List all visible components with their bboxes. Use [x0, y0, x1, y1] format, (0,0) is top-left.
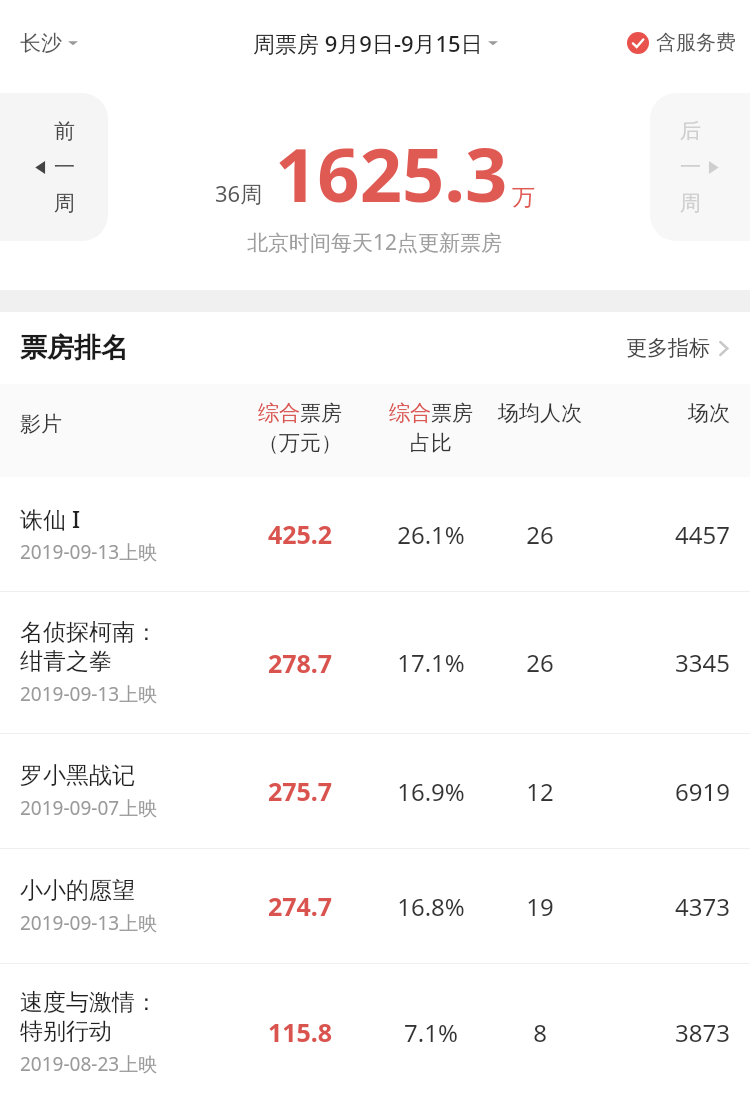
staticText: 场均人次	[478, 400, 602, 426]
button[interactable]: 名侦探柯南：	[0, 592, 750, 733]
button[interactable]: 速度与激情：	[0, 964, 750, 1100]
staticText: 名侦探柯南：	[20, 618, 158, 647]
staticText: 26.1%	[362, 518, 500, 551]
staticText: 北京时间每天12点更新票房	[247, 228, 503, 257]
button[interactable]: 后 一 周	[650, 93, 750, 241]
staticText: 8	[478, 1016, 602, 1049]
staticText: 274.7	[225, 889, 375, 923]
staticText: 19	[478, 890, 602, 923]
staticText: 3873	[620, 1016, 730, 1049]
staticText: 275.7	[225, 774, 375, 808]
staticText: 6919	[620, 775, 730, 808]
staticText: 4457	[620, 518, 730, 551]
staticText: 票房排名	[20, 331, 128, 365]
staticText: 特别行动	[20, 1017, 112, 1046]
staticText: 2019-09-13上映	[20, 910, 158, 936]
staticText: 16.9%	[362, 775, 500, 808]
staticText: 12	[478, 775, 602, 808]
button[interactable]: 前 一 周	[0, 93, 108, 241]
staticText: 速度与激情：	[20, 988, 158, 1017]
staticText: 更多指标	[626, 335, 710, 361]
staticText: 长沙	[20, 30, 62, 56]
button[interactable]: 小小的愿望	[0, 849, 750, 963]
staticText: 115.8	[225, 1015, 375, 1049]
staticText: 4373	[620, 890, 730, 923]
staticText: 7.1%	[362, 1016, 500, 1049]
staticText: 26	[478, 518, 602, 551]
staticText: 278.7	[225, 646, 375, 680]
staticText: 绀青之拳	[20, 647, 112, 676]
staticText: 2019-09-07上映	[20, 795, 158, 821]
staticText: 前 一 周	[54, 118, 75, 216]
staticText: 小小的愿望	[20, 876, 135, 905]
staticText: 诛仙 I	[20, 503, 81, 534]
button[interactable]: 周票房 9月9日-9月15日	[247, 22, 504, 64]
staticText: 425.2	[225, 517, 375, 551]
staticText: 后 一 周	[680, 118, 701, 216]
button[interactable]: 罗小黑战记	[0, 734, 750, 848]
staticText: 综合票房 占比	[362, 400, 500, 457]
staticText: 周票房 9月9日-9月15日	[253, 28, 483, 58]
button[interactable]: 长沙	[12, 24, 86, 62]
staticText: 2019-09-13上映	[20, 539, 158, 565]
staticText: 万	[512, 183, 535, 212]
staticText: 3345	[620, 646, 730, 679]
staticText: 2019-09-13上映	[20, 681, 158, 707]
staticText: 36周	[215, 178, 263, 208]
other: 含服务费已选中	[627, 32, 649, 54]
staticText: 场次	[634, 400, 730, 426]
staticText: 影片	[20, 411, 62, 437]
button[interactable]: 更多指标	[618, 327, 738, 369]
staticText: 16.8%	[362, 890, 500, 923]
button[interactable]: 含服务费已选中	[621, 24, 742, 61]
staticText: 罗小黑战记	[20, 761, 135, 790]
staticText: 26	[478, 646, 602, 679]
staticText: 2019-08-23上映	[20, 1051, 158, 1077]
button[interactable]: 诛仙 I	[0, 477, 750, 591]
staticText: 综合票房 （万元）	[225, 400, 375, 457]
staticText: 1625.3	[275, 123, 508, 224]
staticText: 17.1%	[362, 646, 500, 679]
staticText: 含服务费	[656, 30, 736, 55]
